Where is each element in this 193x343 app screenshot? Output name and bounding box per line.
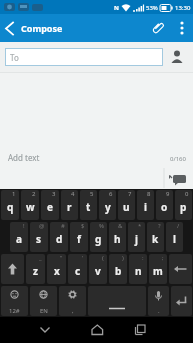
staticText: ' [82,254,84,262]
staticText: @ [39,222,45,230]
button[interactable]: t [80,190,97,220]
staticText: g [95,232,102,246]
button[interactable]: n [129,254,147,284]
button[interactable]: . [148,286,169,316]
button[interactable] [88,286,146,316]
button[interactable] [169,254,192,284]
staticText: 5 [90,190,94,198]
staticText: 9 [166,190,170,198]
button[interactable]: o [156,190,173,220]
staticText: 6 [109,190,113,198]
button[interactable]: c [68,254,87,284]
staticText: / [177,222,180,230]
staticText: , [72,307,74,315]
staticText: q [7,200,14,214]
staticText: o [161,200,168,214]
staticText: h [114,232,121,246]
staticText: Add text [8,152,40,163]
staticText: 0 [185,190,189,198]
staticText: 53% [146,4,158,12]
button[interactable]: v [89,254,107,284]
button[interactable]: EN [30,286,57,316]
staticText: 8 [147,190,151,198]
button[interactable] [167,47,187,67]
staticText: c [75,264,81,278]
button[interactable] [73,317,121,343]
button[interactable]: a [10,222,28,252]
staticText: b [115,264,122,278]
button[interactable]: g [90,222,107,252]
button[interactable] [145,14,171,42]
staticText: m [153,264,163,278]
button[interactable]: m [149,254,167,284]
button[interactable] [163,165,193,189]
staticText: 4 [71,190,75,198]
button[interactable]: h [109,222,126,252]
staticText: ; [162,254,164,262]
button[interactable]: p [175,190,192,220]
button[interactable]: To [5,48,163,66]
staticText: * [138,222,142,230]
staticText: t [86,200,91,214]
staticText: & [118,222,123,230]
staticText: 1 [12,190,16,198]
button[interactable]: f [70,222,88,252]
staticText: e [47,200,53,214]
button[interactable]: u [118,190,135,220]
button[interactable]: w [21,190,39,220]
button[interactable] [171,286,192,316]
staticText: " [60,254,63,262]
staticText: # [61,222,65,230]
button[interactable]: b [109,254,127,284]
staticText: 2 [32,190,36,198]
staticText: Compose [21,22,63,34]
button[interactable]: d [50,222,68,252]
button[interactable] [121,317,169,343]
button[interactable]: r [61,190,78,220]
staticText: i [144,200,147,214]
staticText: r [67,200,72,214]
button[interactable]: q [1,190,19,220]
staticText: . [158,307,160,315]
staticText: ( [102,254,104,262]
button[interactable]: x [47,254,66,284]
staticText: a [16,232,22,246]
staticText: _ [39,254,42,262]
button[interactable]: j [128,222,145,252]
staticText: N [114,4,119,12]
staticText: 7 [128,190,132,198]
staticText: l [173,232,176,246]
staticText: k [152,232,159,246]
staticText: w [26,200,35,214]
button[interactable] [0,14,19,42]
staticText: p [180,200,187,214]
staticText: n [135,264,142,278]
staticText: $ [81,222,85,230]
staticText: z [33,264,38,278]
button[interactable]: z [26,254,45,284]
staticText: 3 [52,190,56,198]
staticText: ? [158,222,161,230]
staticText: u [123,200,130,214]
staticText: To [10,52,19,63]
staticText: f [77,232,81,246]
staticText: j [135,232,138,246]
staticText: : [142,254,144,262]
button[interactable]: l [166,222,183,252]
button[interactable]: , [59,286,86,316]
button[interactable]: 12# [1,286,28,316]
staticText: ! [23,222,25,230]
staticText: 0/160 [170,155,186,163]
button[interactable]: s [30,222,48,252]
button[interactable]: k [147,222,164,252]
button[interactable] [171,14,193,42]
staticText: s [36,232,42,246]
button[interactable] [21,317,69,343]
staticText: EN [40,307,48,315]
button[interactable]: i [137,190,154,220]
button[interactable]: e [41,190,59,220]
staticText: ) [122,254,124,262]
button[interactable] [1,254,24,284]
button[interactable]: y [99,190,116,220]
staticText: 13:30 [175,4,191,12]
